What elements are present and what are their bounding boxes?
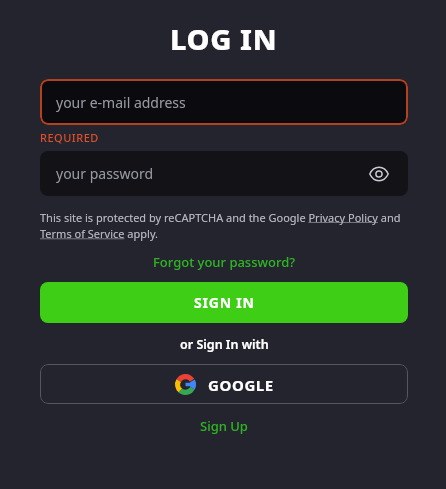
button[interactable]: Sign Up (194, 414, 254, 438)
button[interactable]: your password (40, 151, 408, 196)
button[interactable]: SIGN IN (40, 282, 408, 323)
button[interactable]: Show password (366, 161, 392, 187)
staticText: your e-mail address (56, 93, 186, 112)
staticText: LOG IN (170, 19, 278, 58)
staticText: GOOGLE (208, 375, 274, 395)
staticText: REQUIRED (40, 130, 99, 145)
button[interactable]: GOOGLE (40, 364, 408, 404)
staticText: or Sign In with (180, 336, 269, 353)
button[interactable]: your e-mail address (40, 79, 408, 125)
button[interactable]: Forgot your password? (149, 251, 300, 273)
staticText: SIGN IN (194, 293, 255, 312)
staticText: your password (56, 164, 154, 183)
staticText: This site is protected by reCAPTCHA and … (40, 210, 408, 241)
staticText: Sign Up (200, 417, 248, 435)
staticText: Forgot your password? (153, 253, 296, 271)
